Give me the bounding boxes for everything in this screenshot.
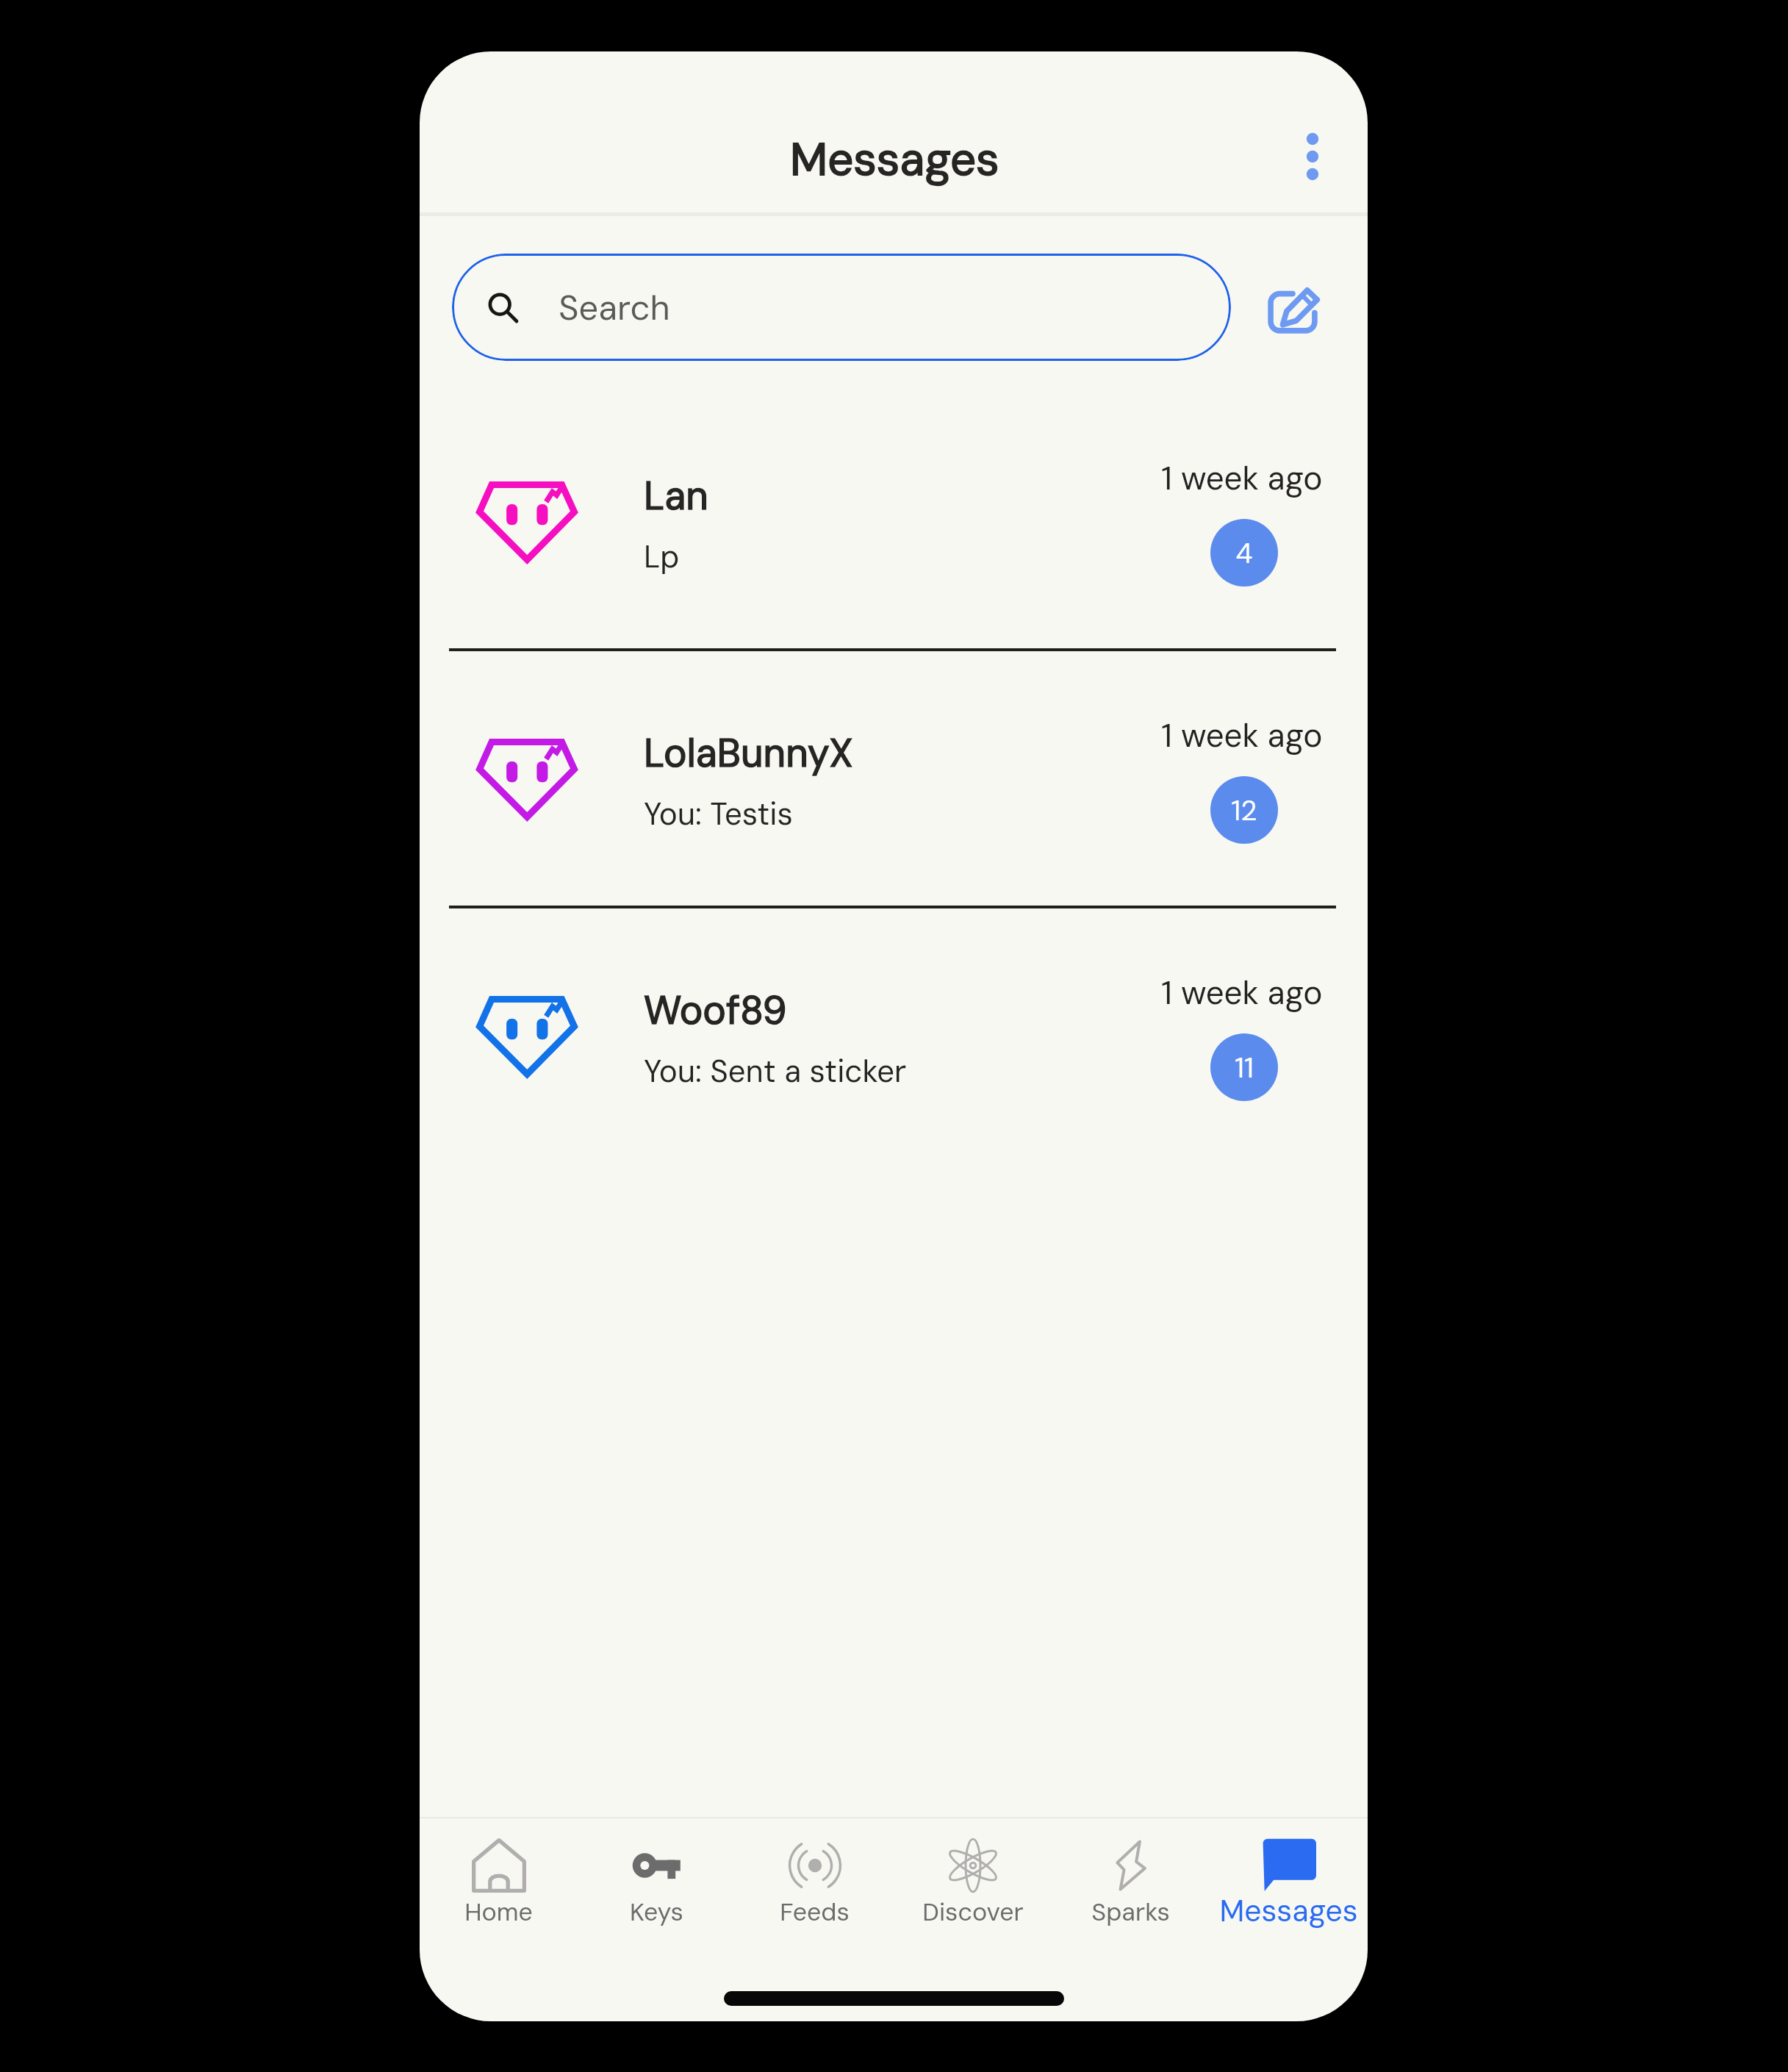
staticText: Discover <box>922 1896 1024 1928</box>
staticText: Home <box>464 1896 533 1928</box>
staticText: Messages <box>790 129 999 189</box>
button[interactable]: Lan <box>420 392 1368 650</box>
button[interactable]: Keys <box>578 1818 736 1948</box>
staticText: Lp <box>644 537 680 577</box>
staticText: 1 week ago <box>1161 714 1323 756</box>
staticText: 11 <box>1235 1050 1254 1086</box>
staticText: Sparks <box>1091 1896 1170 1928</box>
button[interactable]: New message <box>1265 282 1320 336</box>
staticText: Woof89 <box>644 985 787 1036</box>
button[interactable]: Messages <box>1210 1818 1368 1948</box>
staticText: 1 week ago <box>1161 972 1323 1014</box>
button[interactable]: Sparks <box>1052 1818 1210 1948</box>
button[interactable]: LolaBunnyX <box>420 650 1368 907</box>
button[interactable]: Discover <box>894 1818 1052 1948</box>
button[interactable]: Woof89 <box>420 907 1368 1164</box>
staticText: You: Testis <box>644 794 793 834</box>
staticText: 4 <box>1235 535 1253 571</box>
staticText: LolaBunnyX <box>644 728 853 778</box>
staticText: Feeds <box>780 1896 850 1928</box>
staticText: 1 week ago <box>1161 457 1323 499</box>
button[interactable]: Feeds <box>736 1818 894 1948</box>
staticText: Messages <box>1219 1891 1358 1930</box>
button[interactable]: Home <box>420 1818 578 1948</box>
staticText: 12 <box>1231 792 1257 828</box>
staticText: Search <box>559 285 670 330</box>
staticText: Keys <box>630 1896 683 1928</box>
staticText: You: Sent a sticker <box>644 1051 907 1091</box>
staticText: Lan <box>644 470 708 521</box>
button[interactable]: Search <box>452 254 1231 361</box>
button[interactable]: More options <box>1283 127 1342 186</box>
